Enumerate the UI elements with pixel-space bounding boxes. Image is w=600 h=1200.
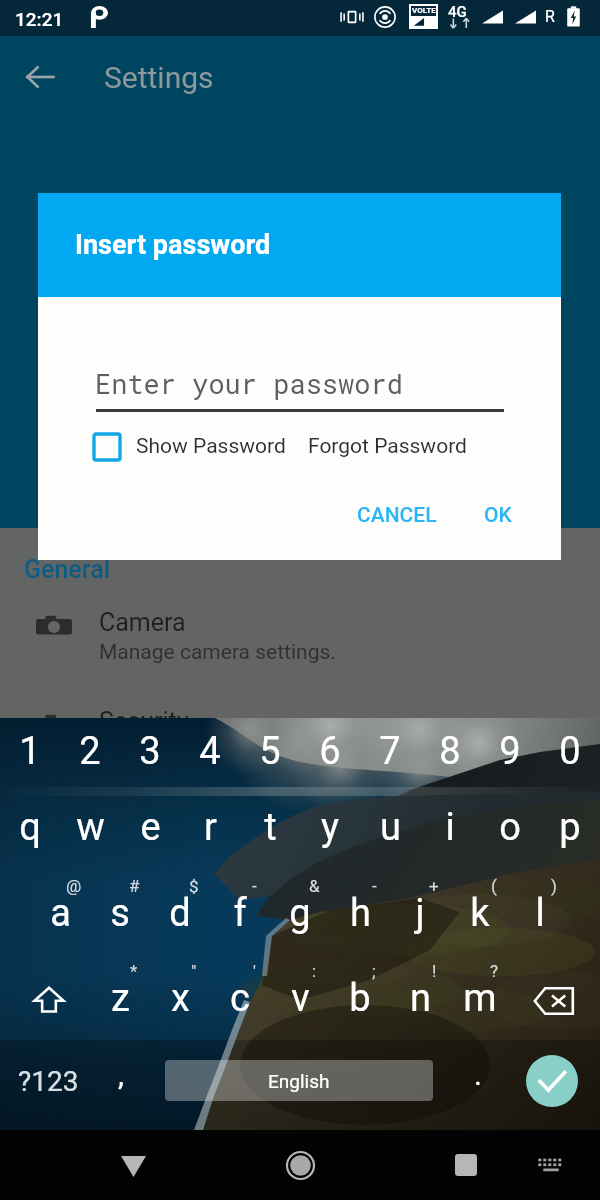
staticText: Camera	[99, 608, 186, 637]
button[interactable]: Forgot Password	[308, 426, 467, 467]
staticText: :	[312, 961, 317, 981]
button[interactable]: Back	[109, 1142, 157, 1190]
staticText: 1	[19, 729, 41, 774]
button[interactable]: d	[150, 872, 210, 954]
button[interactable]: ?123	[8, 1058, 88, 1104]
button[interactable]: z	[90, 957, 150, 1039]
button[interactable]: 8	[420, 718, 480, 787]
button[interactable]: Camera	[0, 600, 600, 674]
staticText: 9	[499, 729, 521, 774]
staticText: h	[350, 891, 371, 936]
button[interactable]: w	[60, 788, 120, 866]
button[interactable]: m	[450, 957, 510, 1039]
button[interactable]: 9	[480, 718, 540, 787]
button[interactable]: a	[30, 872, 90, 954]
staticText: 4G	[448, 3, 467, 21]
button[interactable]: Shift	[25, 976, 73, 1024]
button[interactable]: g	[270, 872, 330, 954]
button[interactable]: p	[540, 788, 600, 866]
button[interactable]: 4	[180, 718, 240, 787]
staticText: s	[110, 891, 130, 936]
button[interactable]: v	[270, 957, 330, 1039]
button[interactable]: Back	[12, 49, 68, 105]
staticText: 4	[199, 729, 221, 774]
staticText: 3	[139, 729, 161, 774]
staticText: #	[129, 876, 140, 896]
staticText: CANCEL	[357, 503, 437, 528]
staticText: 2	[79, 729, 101, 774]
button[interactable]: ,	[98, 1058, 144, 1104]
button[interactable]: o	[480, 788, 540, 866]
staticText: q	[19, 805, 41, 850]
button[interactable]: c	[210, 957, 270, 1039]
staticText: "	[191, 961, 197, 981]
button[interactable]: Enter	[526, 1055, 578, 1107]
button[interactable]: r	[180, 788, 240, 866]
button[interactable]: Switch keyboard	[527, 1141, 575, 1189]
staticText: 7	[379, 729, 401, 774]
button[interactable]: Security	[0, 699, 600, 749]
staticText: $	[189, 876, 199, 896]
button[interactable]: l	[510, 872, 570, 954]
button[interactable]: f	[210, 872, 270, 954]
staticText: ?	[490, 961, 499, 981]
button[interactable]: 7	[360, 718, 420, 787]
button[interactable]: s	[90, 872, 150, 954]
button[interactable]: k	[450, 872, 510, 954]
button[interactable]: Home	[276, 1141, 324, 1189]
staticText: 5	[259, 729, 281, 774]
button[interactable]: 0	[540, 718, 600, 787]
button[interactable]: Recents	[442, 1141, 490, 1189]
button[interactable]: h	[330, 872, 390, 954]
staticText: R	[545, 7, 555, 26]
staticText: j	[415, 891, 425, 936]
button[interactable]: x	[150, 957, 210, 1039]
staticText: d	[169, 891, 191, 936]
staticText: Insert password	[75, 229, 271, 261]
staticText: g	[289, 891, 311, 936]
staticText: r	[204, 805, 217, 850]
button[interactable]: Backspace	[528, 975, 580, 1027]
button[interactable]: j	[390, 872, 450, 954]
staticText: t	[264, 805, 277, 850]
staticText: Manage camera settings.	[99, 640, 336, 665]
staticText: Forgot Password	[308, 434, 467, 459]
staticText: o	[499, 805, 521, 850]
staticText: 6	[319, 729, 341, 774]
staticText: x	[171, 976, 190, 1021]
button[interactable]: 2	[60, 718, 120, 787]
button[interactable]: e	[120, 788, 180, 866]
button[interactable]: q	[0, 788, 60, 866]
staticText: .	[474, 1057, 482, 1092]
staticText: c	[230, 976, 250, 1021]
button[interactable]: i	[420, 788, 480, 866]
staticText: l	[535, 891, 545, 936]
staticText: @	[66, 876, 82, 896]
button[interactable]: 5	[240, 718, 300, 787]
button[interactable]: y	[300, 788, 360, 866]
button[interactable]: u	[360, 788, 420, 866]
button[interactable]: Show Password	[87, 427, 127, 467]
button[interactable]: b	[330, 957, 390, 1039]
button[interactable]: .	[455, 1058, 501, 1104]
staticText: f	[233, 891, 247, 936]
button[interactable]: English	[165, 1060, 433, 1101]
staticText: b	[349, 976, 371, 1021]
button[interactable]: 1	[0, 718, 60, 787]
staticText: '	[253, 961, 256, 981]
staticText: !	[432, 961, 437, 981]
button[interactable]: 3	[120, 718, 180, 787]
staticText: *	[130, 961, 138, 981]
button[interactable]: n	[390, 957, 450, 1039]
button[interactable]: CANCEL	[345, 493, 449, 538]
staticText: )	[551, 876, 557, 896]
staticText: General	[24, 555, 111, 584]
staticText: Settings	[104, 60, 214, 95]
button[interactable]: 6	[300, 718, 360, 787]
button[interactable]: OK	[472, 493, 524, 538]
staticText: Enter your password	[95, 366, 403, 402]
button[interactable]: Show Password	[136, 426, 286, 467]
button[interactable]: t	[240, 788, 300, 866]
staticText: &	[309, 876, 320, 896]
